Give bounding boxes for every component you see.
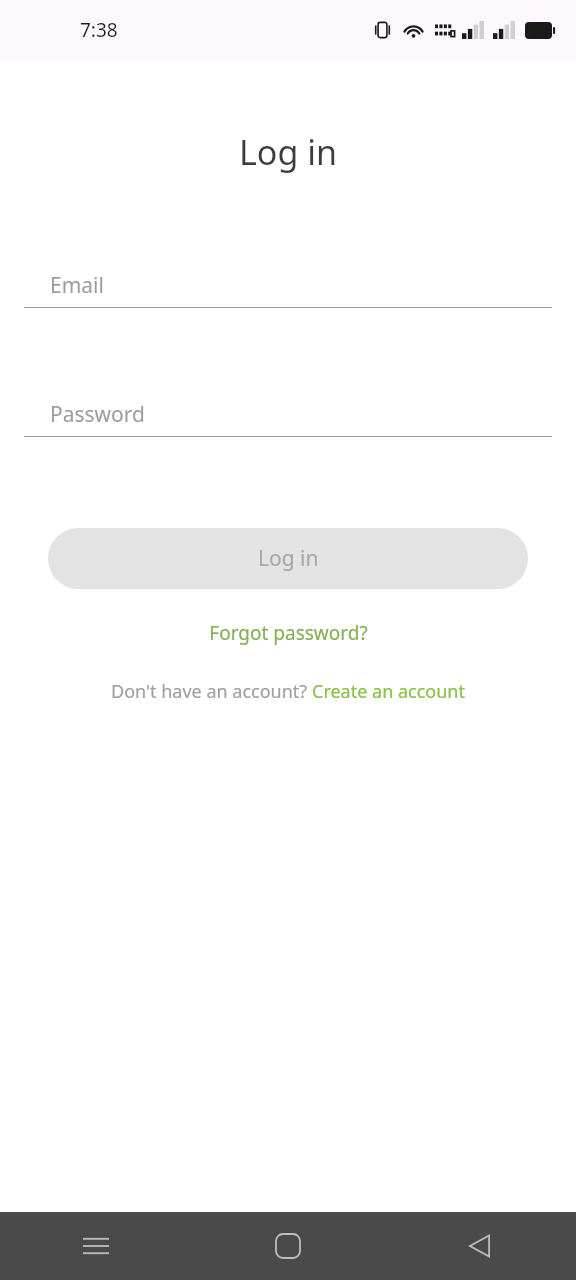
staticText: 7:38 xyxy=(80,17,118,43)
staticText: Log in xyxy=(258,544,319,573)
staticText: Email xyxy=(50,271,104,300)
staticText: Password xyxy=(50,400,145,429)
staticText: Don't have an account? xyxy=(111,679,312,704)
button[interactable]: Forgot password? xyxy=(0,616,576,650)
staticText: Log in xyxy=(0,129,576,175)
button[interactable]: Back xyxy=(384,1212,576,1280)
button[interactable]: Home xyxy=(192,1212,384,1280)
staticText: Create an account xyxy=(312,679,465,704)
button[interactable]: Email xyxy=(24,263,552,308)
staticText: Forgot password? xyxy=(209,620,368,646)
button[interactable]: Password xyxy=(24,392,552,437)
button[interactable]: Create an account xyxy=(312,679,465,704)
button[interactable]: Log in xyxy=(48,528,528,589)
button[interactable]: Recent apps xyxy=(0,1212,192,1280)
